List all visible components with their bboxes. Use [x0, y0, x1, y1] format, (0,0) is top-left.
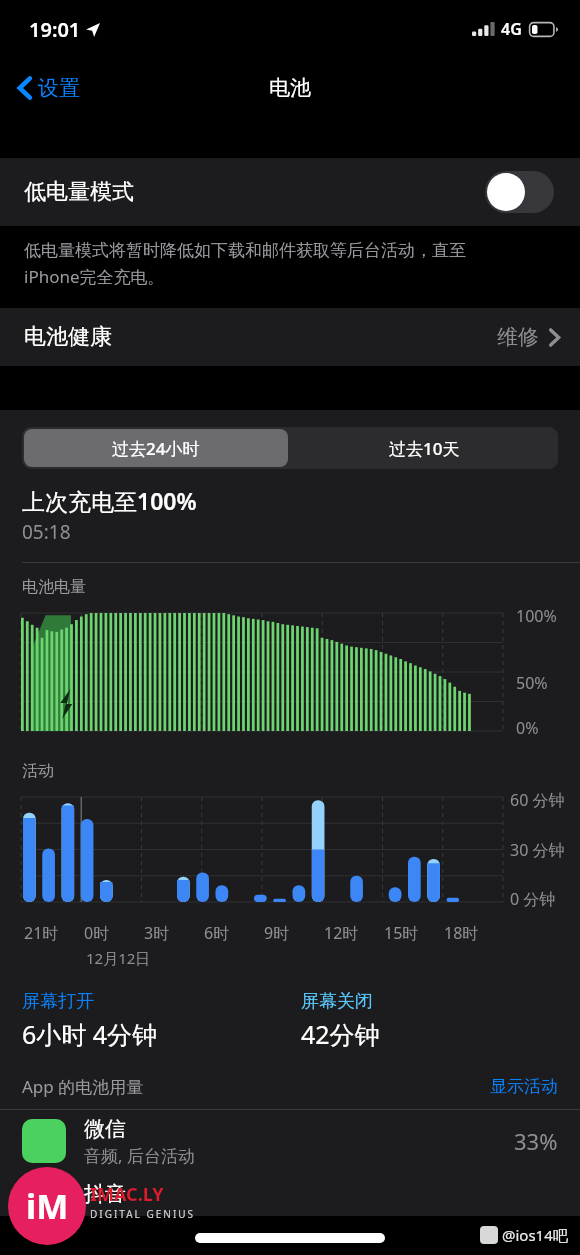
staticText: 电池电量: [22, 577, 86, 597]
button[interactable]: 显示活动: [490, 1076, 558, 1097]
staticText: 低电量模式: [24, 178, 134, 206]
staticText: 42分钟: [301, 1017, 380, 1051]
staticText: 0时: [84, 922, 110, 944]
staticText: 显示活动: [490, 1076, 558, 1097]
staticText: 21时: [24, 922, 59, 944]
staticText: 4G: [501, 18, 522, 40]
staticText: 6时: [204, 922, 230, 944]
button[interactable]: 微信: [0, 1110, 580, 1172]
button[interactable]: 低电量模式: [0, 158, 580, 226]
staticText: 19:01: [29, 16, 81, 43]
button[interactable]: 屏幕打开: [22, 990, 301, 1051]
staticText: 活动: [22, 761, 54, 781]
staticText: 微信: [84, 1116, 126, 1142]
staticText: 屏幕关闭: [301, 990, 373, 1013]
staticText: 过去24小时: [112, 437, 200, 460]
staticText: 12时: [324, 922, 359, 944]
staticText: 音频, 后台活动: [84, 1144, 195, 1167]
button[interactable]: 电池健康: [0, 308, 580, 366]
staticText: 屏幕打开: [22, 990, 94, 1013]
staticText: 电池健康: [24, 323, 112, 351]
staticText: 12月12日: [86, 948, 151, 968]
staticText: 15时: [384, 922, 419, 944]
staticText: 50%: [516, 672, 548, 694]
staticText: 上次充电至100%: [22, 485, 197, 516]
staticText: 60 分钟: [510, 789, 565, 811]
button[interactable]: 过去10天: [290, 427, 558, 469]
staticText: 18时: [444, 922, 479, 944]
staticText: 电池: [269, 75, 311, 101]
staticText: 9时: [264, 922, 290, 944]
staticText: 05:18: [22, 519, 71, 545]
staticText: IMAC.LY: [90, 1182, 164, 1207]
staticText: 0 分钟: [510, 888, 556, 910]
button[interactable]: Low Power Mode toggle: [485, 171, 554, 213]
button[interactable]: 设置: [12, 71, 86, 105]
staticText: 维修: [497, 324, 539, 350]
staticText: 0%: [516, 717, 539, 739]
staticText: 抖音: [84, 1181, 126, 1207]
staticText: App 的电池用量: [22, 1075, 144, 1098]
staticText: 33%: [514, 1126, 558, 1156]
staticText: iM: [26, 1183, 69, 1229]
button[interactable]: 过去24小时: [24, 429, 288, 467]
staticText: 6小时 4分钟: [22, 1017, 158, 1051]
staticText: @ios14吧: [502, 1225, 568, 1245]
staticText: 设置: [38, 75, 80, 101]
staticText: 过去10天: [389, 437, 460, 460]
staticText: 100%: [516, 605, 557, 627]
button[interactable]: 屏幕关闭: [301, 990, 580, 1051]
staticText: 低电量模式将暂时降低如下载和邮件获取等后台活动，直至 iPhone完全充电。: [24, 240, 466, 288]
staticText: 3时: [144, 922, 170, 944]
staticText: DIGITAL GENIUS: [90, 1207, 196, 1221]
staticText: 30 分钟: [510, 839, 565, 861]
